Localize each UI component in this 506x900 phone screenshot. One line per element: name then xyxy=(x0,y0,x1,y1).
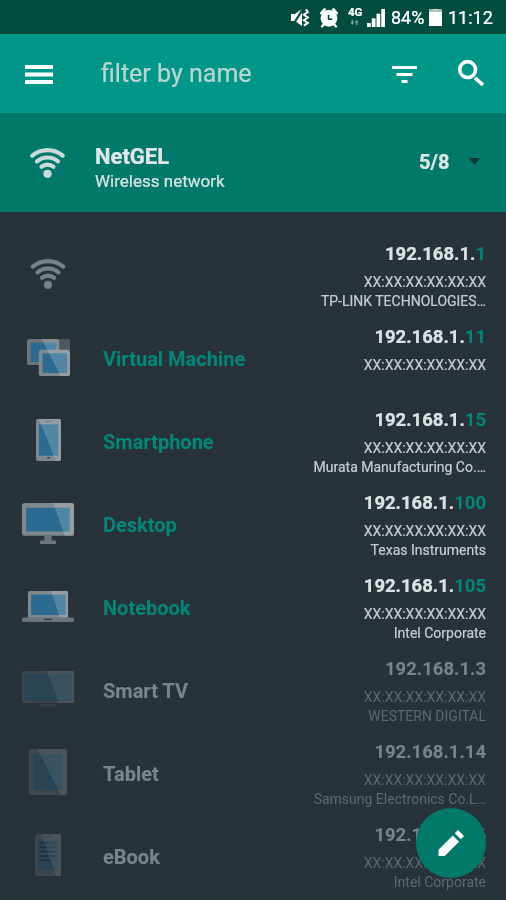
staticText: NetGEL xyxy=(95,144,170,170)
button[interactable]: eBook xyxy=(0,814,506,897)
button[interactable]: Smart TV xyxy=(0,648,506,731)
staticText: Samsung Electronics Co.L… xyxy=(313,791,486,807)
staticText: XX:XX:XX:XX:XX:XX xyxy=(363,440,486,456)
staticText: 192.168.1.16 xyxy=(374,824,486,846)
staticText: Smartphone xyxy=(103,430,214,453)
staticText: Murata Manufacturing Co.… xyxy=(313,459,486,475)
staticText: Desktop xyxy=(103,513,177,536)
staticText: 84% xyxy=(391,7,425,28)
button[interactable]: Virtual Machine xyxy=(0,316,506,399)
staticText: TP-LINK TECHNOLOGIES… xyxy=(320,293,486,309)
staticText: 192.168.1.14 xyxy=(374,741,486,763)
staticText: XX:XX:XX:XX:XX:XX xyxy=(363,523,486,539)
staticText: XX:XX:XX:XX:XX:XX xyxy=(363,357,486,373)
button[interactable]: Smartphone xyxy=(0,399,506,482)
button[interactable]: 192.168.1.1 xyxy=(0,233,506,316)
button[interactable]: Desktop xyxy=(0,482,506,565)
staticText: 5/8 xyxy=(419,150,450,173)
button[interactable]: Edit xyxy=(416,808,486,878)
staticText: Texas Instruments xyxy=(370,542,486,558)
staticText: Intel Corporate xyxy=(393,874,486,890)
staticText: filter by name xyxy=(101,59,252,88)
staticText: Tablet xyxy=(103,762,159,785)
staticText: Wireless network xyxy=(95,171,225,191)
button[interactable]: Tablet xyxy=(0,731,506,814)
staticText: Smart TV xyxy=(103,679,188,702)
staticText: 192.168.1.100 xyxy=(363,492,486,514)
button[interactable]: Search xyxy=(444,47,498,101)
staticText: 4G xyxy=(348,5,363,18)
staticText: Virtual Machine xyxy=(103,347,246,370)
staticText: Intel Corporate xyxy=(393,625,486,641)
staticText: XX:XX:XX:XX:XX:XX xyxy=(363,855,486,871)
button[interactable]: Filter xyxy=(377,47,431,101)
staticText: 11:12 xyxy=(448,7,493,28)
button[interactable]: NetGEL xyxy=(0,113,506,212)
button[interactable]: Menu xyxy=(12,47,66,101)
staticText: XX:XX:XX:XX:XX:XX xyxy=(363,772,486,788)
staticText: 192.168.1.15 xyxy=(374,409,486,431)
button[interactable]: Notebook xyxy=(0,565,506,648)
staticText: 192.168.1.3 xyxy=(384,658,486,680)
staticText: XX:XX:XX:XX:XX:XX xyxy=(363,689,486,705)
staticText: eBook xyxy=(103,845,160,868)
staticText: XX:XX:XX:XX:XX:XX xyxy=(363,606,486,622)
staticText: 192.168.1.11 xyxy=(374,326,486,348)
staticText: WESTERN DIGITAL xyxy=(368,708,486,724)
staticText: 192.168.1.105 xyxy=(363,575,486,597)
staticText: XX:XX:XX:XX:XX:XX xyxy=(363,274,486,290)
staticText: Notebook xyxy=(103,596,191,619)
staticText: 192.168.1.1 xyxy=(384,243,486,265)
